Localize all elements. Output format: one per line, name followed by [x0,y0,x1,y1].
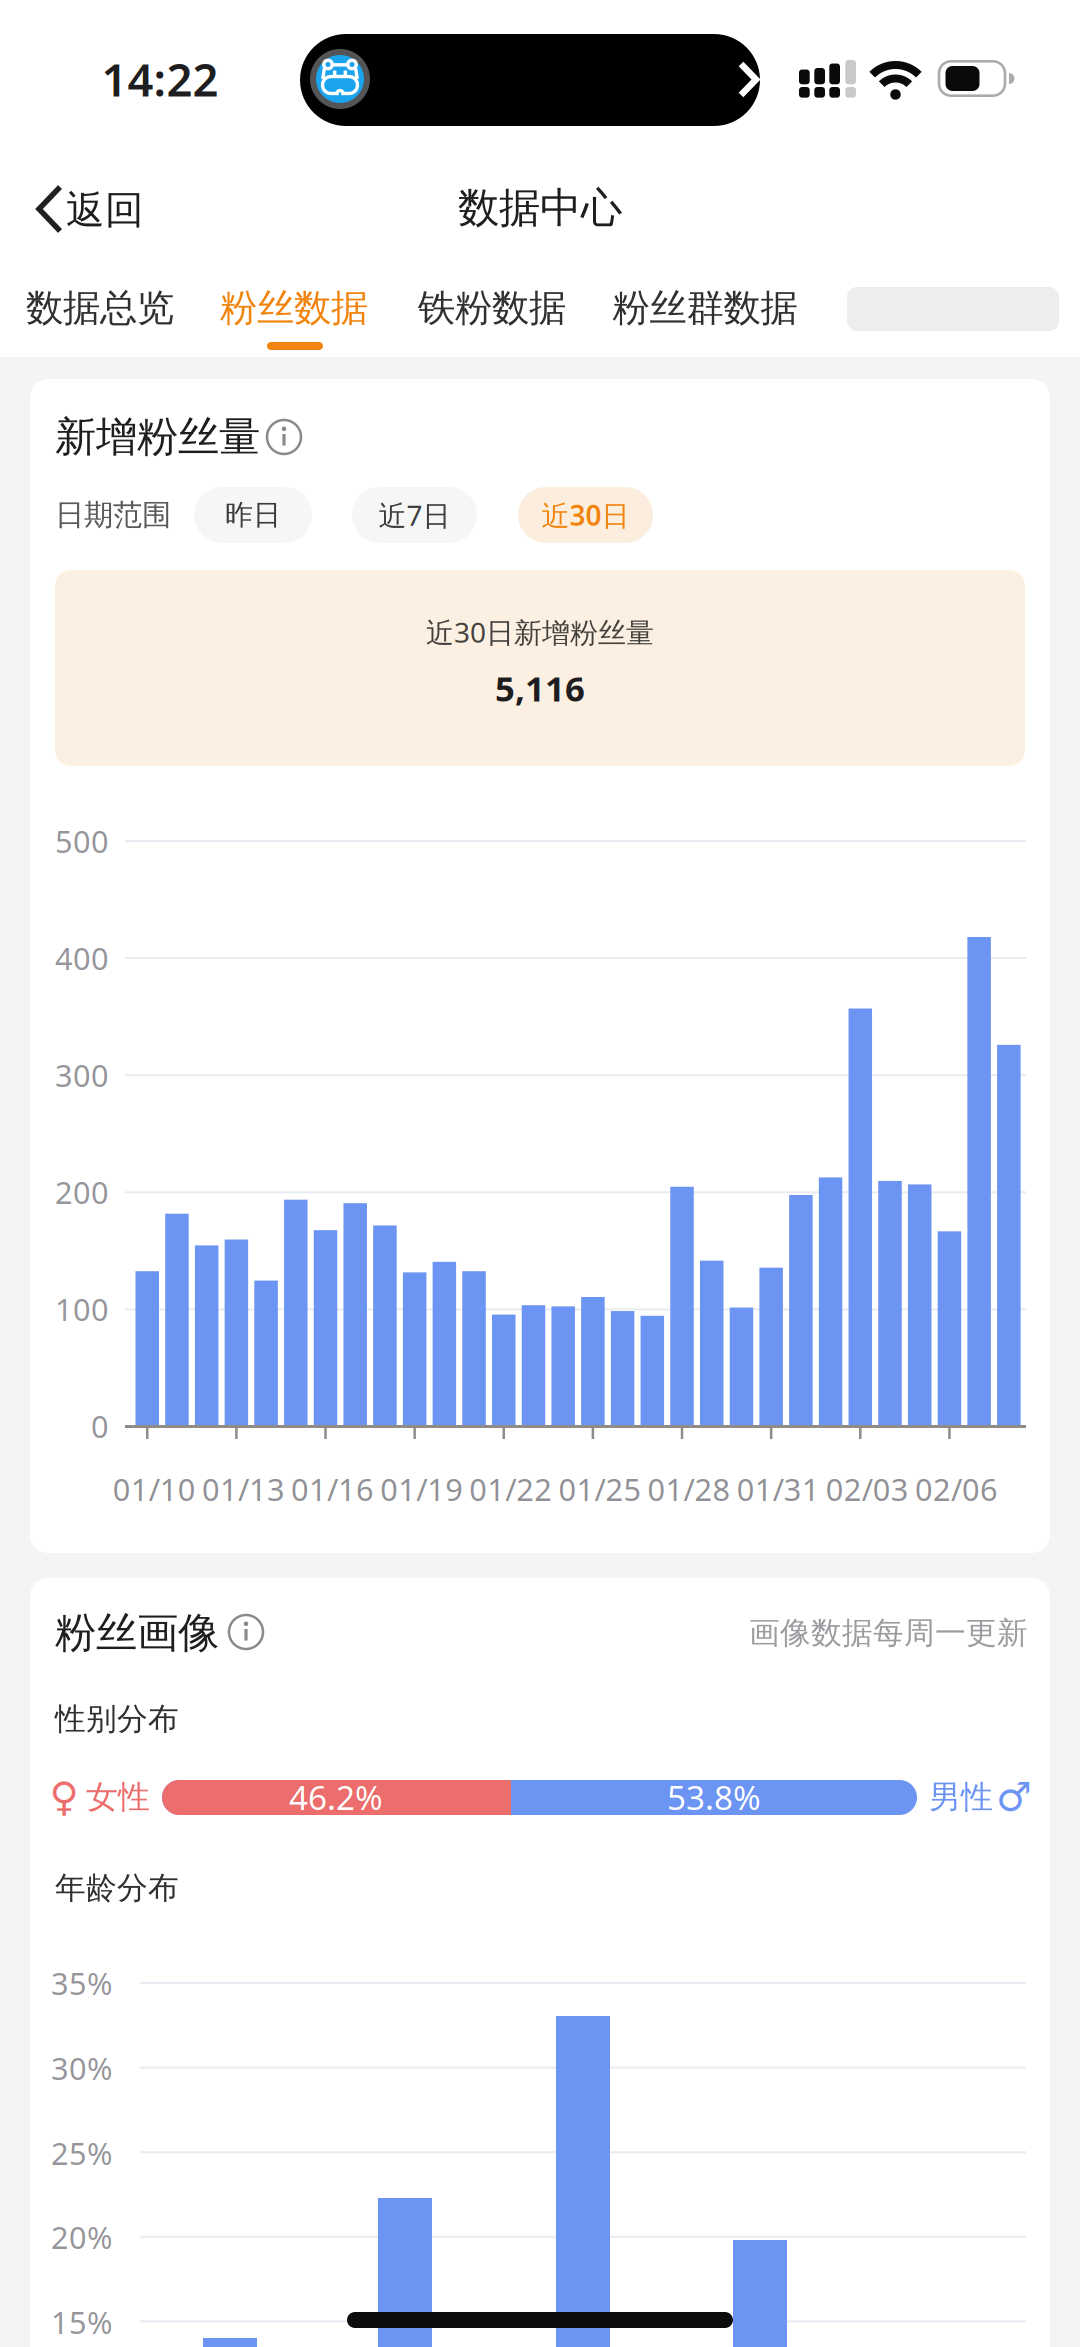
staticText: 数据总览 [26,285,174,331]
staticText: 男性 [929,1777,993,1817]
staticText: 性别分布 [55,1700,179,1738]
staticText: ♀ [49,1774,78,1820]
staticText: ♂ [996,1774,1032,1820]
staticText: 年龄分布 [55,1869,179,1907]
staticText: 粉丝画像 [55,1608,219,1658]
button[interactable]: 昨日 [194,487,312,543]
staticText: 铁粉数据 [418,285,566,331]
staticText: 14:22 [101,49,218,109]
staticText: 02/03 [826,1469,909,1509]
staticText: 01/10 [113,1469,196,1509]
staticText: 近7日 [378,496,450,534]
staticText: 100 [55,1289,109,1329]
staticText: 300 [55,1055,109,1095]
staticText: 昨日 [225,498,281,532]
staticText: 近30日新增粉丝量 [426,613,654,651]
button[interactable]: 说明 [226,1612,266,1652]
staticText: 数据中心 [458,183,622,233]
staticText: 返回 [66,186,144,234]
staticText: 500 [55,821,109,861]
staticText: 近30日 [541,496,629,534]
staticText: 35% [51,1963,112,2003]
staticText: 02/06 [915,1469,998,1509]
staticText: 01/22 [469,1469,552,1509]
button[interactable]: 说明 [264,417,304,457]
staticText: 画像数据每周一更新 [749,1614,1028,1652]
staticText: 30% [51,2048,112,2088]
staticText: 新增粉丝量 [55,412,260,462]
staticText: 25% [51,2133,112,2173]
button[interactable]: 铁粉数据 [392,283,592,333]
button[interactable]: 粉丝数据 [194,283,394,333]
staticText: 5,116 [495,665,585,711]
button[interactable]: 数据总览 [0,283,200,333]
staticText: 01/31 [737,1469,820,1509]
staticText: 20% [51,2217,112,2257]
button[interactable]: 粉丝群数据 [595,283,815,333]
staticText: 0 [91,1406,109,1446]
staticText: 53.8% [667,1775,761,1819]
staticText: 粉丝数据 [220,285,368,331]
button[interactable]: 近30日 [518,487,653,543]
button[interactable]: 返回 [18,175,168,245]
staticText: 01/19 [380,1469,463,1509]
staticText: 400 [55,938,109,978]
staticText: 200 [55,1172,109,1212]
staticText: 46.2% [289,1775,383,1819]
staticText: 15% [51,2302,112,2342]
staticText: 01/28 [647,1469,730,1509]
staticText: 女性 [86,1777,150,1817]
staticText: 01/13 [202,1469,285,1509]
staticText: 01/16 [291,1469,374,1509]
staticText: 粉丝群数据 [612,285,797,331]
staticText: 日期范围 [55,497,171,533]
staticText: 01/25 [558,1469,641,1509]
button[interactable]: 近7日 [352,487,477,543]
